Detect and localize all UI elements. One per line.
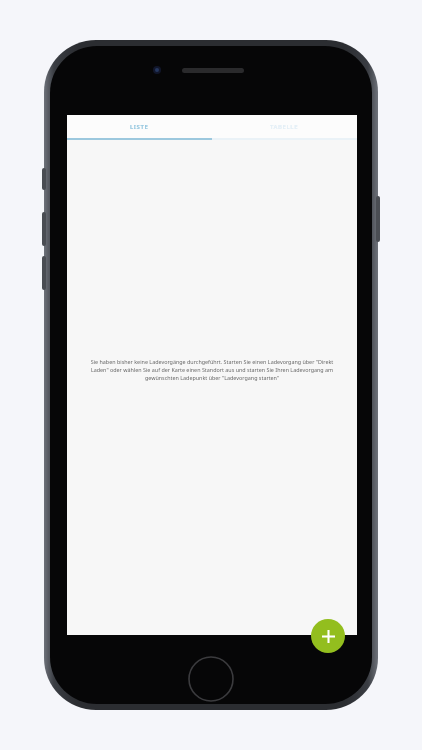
staticText: Sie haben bisher keine Ladevorgänge durc…	[89, 358, 335, 382]
staticText: TABELLE	[270, 123, 299, 131]
button[interactable]: LISTE	[67, 115, 212, 138]
button[interactable]: Ladevorgang starten	[311, 619, 345, 653]
staticText: LISTE	[130, 123, 149, 131]
